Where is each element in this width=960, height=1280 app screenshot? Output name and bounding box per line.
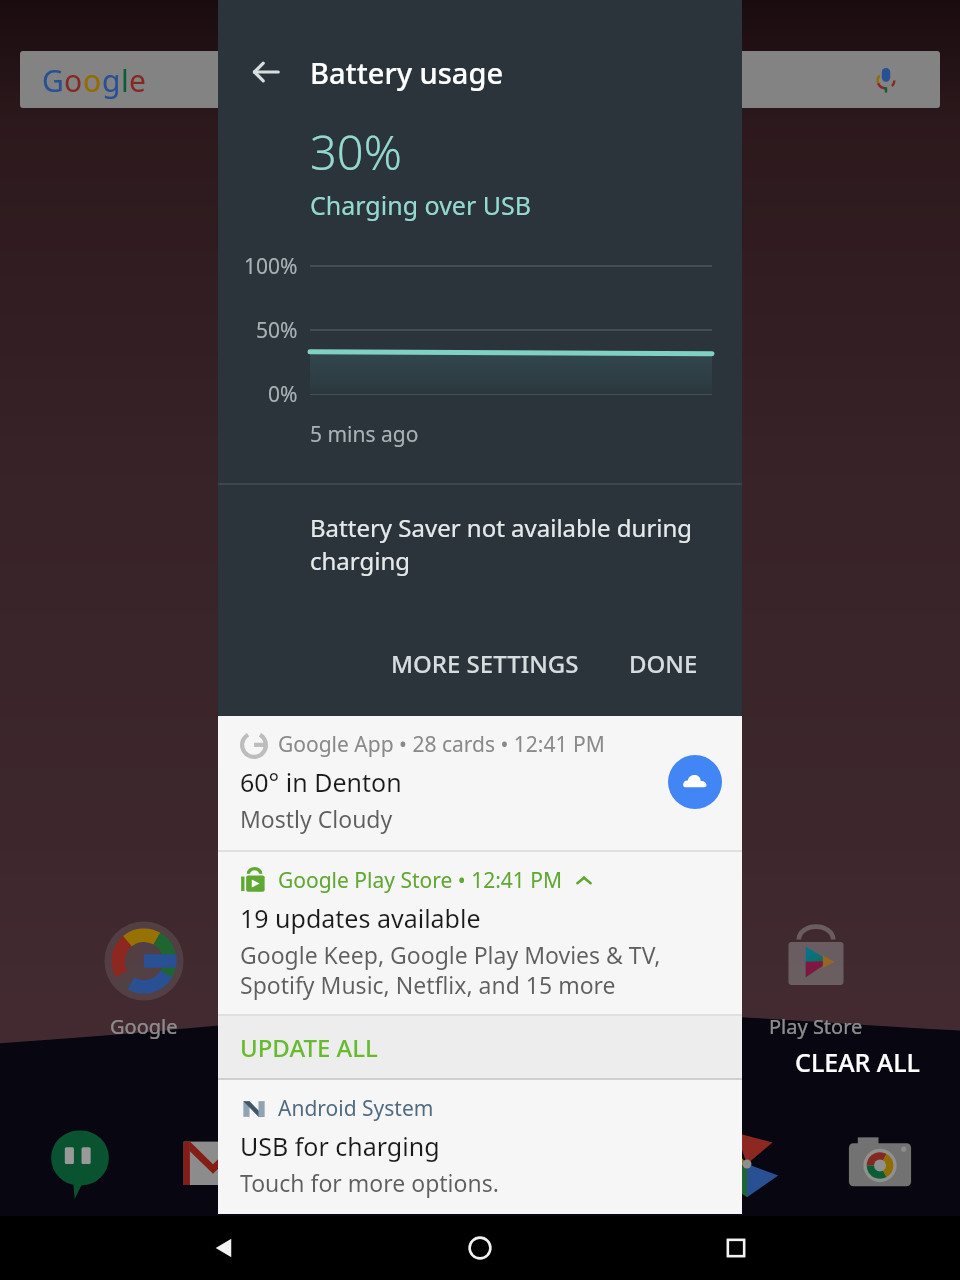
button[interactable]: MORE SETTINGS bbox=[377, 639, 593, 688]
staticText: 30% bbox=[310, 120, 402, 184]
staticText: Battery Saver not available during charg… bbox=[310, 511, 742, 577]
staticText: 19 updates available bbox=[240, 901, 481, 935]
staticText: G bbox=[42, 60, 64, 101]
button[interactable]: Recent apps bbox=[704, 1216, 768, 1280]
button[interactable]: Voice search bbox=[864, 58, 908, 102]
staticText: 50% bbox=[256, 316, 298, 345]
staticText: l bbox=[121, 60, 129, 101]
staticText: DONE bbox=[629, 647, 698, 680]
button[interactable]: Chrome bbox=[301, 1118, 393, 1210]
staticText: Google Play Store • 12:41 PM bbox=[278, 866, 563, 895]
staticText: Android System bbox=[278, 1094, 434, 1123]
button[interactable]: Camera bbox=[834, 1118, 926, 1210]
staticText: Play bbox=[573, 1013, 612, 1040]
staticText: USB for charging bbox=[240, 1129, 440, 1163]
button[interactable]: Google Play Store • 12:41 PM bbox=[218, 852, 742, 1014]
button[interactable]: Create bbox=[288, 915, 448, 1040]
staticText: e bbox=[129, 60, 146, 101]
staticText: Touch for more options. bbox=[240, 1167, 499, 1198]
button[interactable]: Hangouts bbox=[34, 1118, 126, 1210]
button[interactable]: Android System bbox=[218, 1080, 742, 1214]
staticText: 0% bbox=[268, 380, 298, 409]
staticText: 5 mins ago bbox=[310, 420, 419, 449]
staticText: CLEAR ALL bbox=[795, 1045, 920, 1079]
staticText: 100% bbox=[244, 252, 298, 281]
button[interactable]: Google App • 28 cards • 12:41 PM bbox=[218, 716, 742, 850]
staticText: Google App • 28 cards • 12:41 PM bbox=[278, 730, 605, 759]
button[interactable]: G bbox=[20, 51, 940, 108]
button[interactable]: Gmail bbox=[167, 1118, 259, 1210]
staticText: o bbox=[83, 60, 102, 101]
button[interactable]: Back bbox=[192, 1216, 256, 1280]
button[interactable]: CLEAR ALL bbox=[560, 1036, 920, 1088]
staticText: Google Keep, Google Play Movies & TV, Sp… bbox=[240, 939, 722, 1000]
button[interactable]: Play Store bbox=[736, 915, 896, 1040]
button[interactable]: Photos bbox=[701, 1118, 793, 1210]
button[interactable]: Home bbox=[448, 1216, 512, 1280]
staticText: Battery usage bbox=[310, 53, 504, 92]
staticText: 60° in Denton bbox=[240, 765, 402, 799]
staticText: Create bbox=[337, 1013, 399, 1040]
staticText: o bbox=[64, 60, 83, 101]
staticText: Google bbox=[110, 1013, 178, 1040]
button[interactable]: Google bbox=[64, 915, 224, 1040]
staticText: MORE SETTINGS bbox=[391, 647, 579, 680]
staticText: UPDATE ALL bbox=[240, 1031, 378, 1064]
button[interactable]: UPDATE ALL bbox=[218, 1016, 742, 1078]
button[interactable]: DONE bbox=[615, 639, 712, 688]
staticText: Play Store bbox=[769, 1013, 863, 1040]
button[interactable]: All apps bbox=[434, 1118, 526, 1210]
button[interactable]: Back bbox=[240, 46, 292, 98]
staticText: Charging over USB bbox=[310, 188, 532, 222]
staticText: Mostly Cloudy bbox=[240, 803, 393, 834]
staticText: g bbox=[102, 60, 121, 101]
button[interactable]: Play bbox=[512, 915, 672, 1040]
